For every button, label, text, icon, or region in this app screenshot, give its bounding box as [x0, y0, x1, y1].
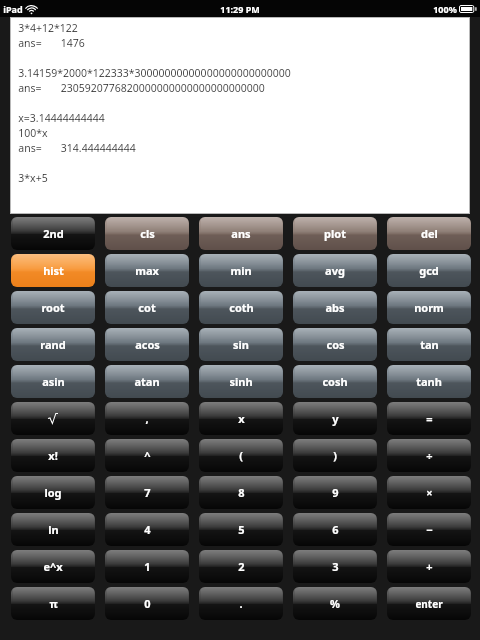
staticText: 11:29 PM — [220, 3, 260, 15]
staticText: rand — [40, 337, 66, 352]
button[interactable]: asin — [11, 365, 95, 398]
staticText: x! — [48, 448, 58, 463]
button[interactable]: 8 — [199, 476, 283, 509]
staticText: ÷ — [426, 448, 433, 463]
staticText: tanh — [416, 374, 442, 389]
button[interactable]: enter — [387, 587, 471, 620]
button[interactable]: norm — [387, 291, 471, 324]
button[interactable]: ans — [199, 217, 283, 250]
button[interactable]: percent — [293, 587, 377, 620]
button[interactable]: log — [11, 476, 95, 509]
button[interactable]: x! — [11, 439, 95, 472]
staticText: sin — [233, 337, 249, 352]
button[interactable]: cosh — [293, 365, 377, 398]
button[interactable]: power — [105, 439, 189, 472]
button[interactable]: e^x — [11, 550, 95, 583]
button[interactable]: minus — [387, 513, 471, 546]
staticText: , — [145, 411, 149, 426]
button[interactable]: atan — [105, 365, 189, 398]
staticText: e^x — [43, 559, 63, 574]
staticText: acos — [135, 337, 160, 352]
button[interactable]: cos — [293, 328, 377, 361]
staticText: enter — [415, 597, 443, 611]
button[interactable]: 3 — [293, 550, 377, 583]
staticText: del — [421, 226, 438, 241]
button[interactable]: rand — [11, 328, 95, 361]
staticText: tan — [420, 337, 439, 352]
button[interactable]: plus — [387, 550, 471, 583]
staticText: − — [426, 522, 433, 537]
button[interactable]: 1 — [105, 550, 189, 583]
button[interactable]: y — [293, 402, 377, 435]
staticText: 1 — [144, 559, 151, 574]
button[interactable]: coth — [199, 291, 283, 324]
staticText: ans= 1476 — [18, 36, 85, 50]
staticText: ans — [231, 226, 251, 241]
button[interactable]: root — [11, 291, 95, 324]
staticText: atan — [134, 374, 160, 389]
staticText: 7 — [144, 485, 151, 500]
button[interactable]: 0 — [105, 587, 189, 620]
button[interactable]: sin — [199, 328, 283, 361]
button[interactable]: avg — [293, 254, 377, 287]
staticText: x=3.14444444444 — [18, 111, 105, 125]
button[interactable]: sinh — [199, 365, 283, 398]
button[interactable]: divide — [387, 439, 471, 472]
button[interactable]: 6 — [293, 513, 377, 546]
staticText: cos — [326, 337, 345, 352]
button[interactable]: x — [199, 402, 283, 435]
button[interactable]: tan — [387, 328, 471, 361]
button[interactable]: 2 — [199, 550, 283, 583]
button[interactable]: 7 — [105, 476, 189, 509]
button[interactable]: plot — [293, 217, 377, 250]
staticText: 3*4+12*122 — [18, 21, 78, 35]
button[interactable]: multiply — [387, 476, 471, 509]
button[interactable]: abs — [293, 291, 377, 324]
button[interactable]: acos — [105, 328, 189, 361]
staticText: cot — [138, 300, 156, 315]
button[interactable]: decimal point — [199, 587, 283, 620]
staticText: x — [238, 411, 245, 426]
button[interactable]: max — [105, 254, 189, 287]
button[interactable]: close parenthesis — [293, 439, 377, 472]
staticText: + — [426, 559, 433, 574]
staticText: 8 — [238, 485, 245, 500]
staticText: 3 — [332, 559, 339, 574]
button[interactable]: open parenthesis — [199, 439, 283, 472]
staticText: root — [41, 300, 65, 315]
staticText: = — [426, 411, 433, 426]
staticText: π — [49, 596, 58, 611]
staticText: ans= 2305920776820000000000000000000000 — [18, 81, 265, 95]
staticText: cosh — [322, 374, 348, 389]
staticText: 3*x+5 — [18, 171, 48, 185]
button[interactable]: min — [199, 254, 283, 287]
button[interactable]: gcd — [387, 254, 471, 287]
staticText: 4 — [144, 522, 151, 537]
staticText: 3.14159*2000*122333*30000000000000000000… — [18, 66, 291, 80]
button[interactable]: cls — [105, 217, 189, 250]
staticText: 5 — [238, 522, 245, 537]
button[interactable]: 2nd — [11, 217, 95, 250]
staticText: ln — [48, 522, 59, 537]
button[interactable]: equals — [387, 402, 471, 435]
button[interactable]: tanh — [387, 365, 471, 398]
staticText: 100*x — [18, 126, 48, 140]
staticText: abs — [325, 300, 345, 315]
button[interactable]: cot — [105, 291, 189, 324]
staticText: max — [135, 263, 159, 278]
button[interactable]: square root — [11, 402, 95, 435]
button[interactable]: comma — [105, 402, 189, 435]
staticText: asin — [42, 374, 65, 389]
button[interactable]: ln — [11, 513, 95, 546]
staticText: norm — [414, 300, 444, 315]
button[interactable]: del — [387, 217, 471, 250]
button[interactable]: pi — [11, 587, 95, 620]
button[interactable]: 9 — [293, 476, 377, 509]
staticText: ans= 314.444444444 — [18, 141, 136, 155]
staticText: coth — [229, 300, 254, 315]
staticText: 2 — [238, 559, 245, 574]
button[interactable]: 5 — [199, 513, 283, 546]
button[interactable]: hist — [11, 254, 95, 287]
staticText: ) — [333, 448, 337, 463]
button[interactable]: 4 — [105, 513, 189, 546]
